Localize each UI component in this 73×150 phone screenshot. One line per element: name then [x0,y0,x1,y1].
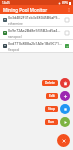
button[interactable]: Delete [42,80,58,86]
button[interactable]: Run [60,117,70,127]
staticText: Run [48,120,55,124]
button[interactable]: Select item [63,16,71,24]
button[interactable]: Close menu [57,134,70,147]
staticText: Mining Pool Monitor [3,7,48,13]
staticText: Edit [49,94,55,98]
button[interactable]: 0x9e72Aa2Bd8e5f35B2cd5a4A73b0c6Be8... [0,27,73,40]
button[interactable]: More options [64,5,73,14]
staticText: flexpool [8,48,20,52]
button[interactable]: Select item [63,42,71,50]
staticText: Stop [48,107,55,111]
button[interactable]: Select item [63,29,71,37]
staticText: 0xd771b8B8a2b1A0e1Bd9C7118f1c3e4aE... [8,41,62,46]
staticText: Delete [45,81,55,85]
staticText: 89% [62,1,68,5]
staticText: ethermine [8,22,23,26]
button[interactable]: 0x3d4B2F31cb3cE8045B6aF91C3F1c3cd9... [0,14,73,27]
button[interactable]: Delete [60,78,70,88]
button[interactable]: Edit [60,91,70,101]
button[interactable]: 0xd771b8B8a2b1A0e1Bd9C7118f1c3e4aE... [0,40,73,53]
staticText: 0x3d4B2F31cb3cE8045B6aF91C3F1c3cd9... [8,15,62,20]
staticText: nanopool [8,35,22,39]
staticText: 14:45 [2,1,10,5]
button[interactable]: Edit [46,93,58,99]
staticText: 0x9e72Aa2Bd8e5f35B2cd5a4A73b0c6Be8... [8,28,62,33]
button[interactable]: Stop [60,104,70,114]
button[interactable]: Stop [45,106,58,112]
button[interactable]: Run [45,119,58,125]
